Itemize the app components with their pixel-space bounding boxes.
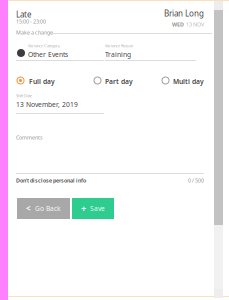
staticText: WED [172, 21, 184, 28]
staticText: Don't disclose personal info [16, 177, 86, 184]
staticText: Variance Category [28, 43, 60, 48]
staticText: Other Events [28, 50, 68, 59]
staticText: < [26, 203, 31, 214]
staticText: Training [105, 50, 131, 59]
staticText: Late [16, 9, 32, 20]
staticText: Variance Reason [105, 43, 133, 48]
staticText: 13 NOV [186, 21, 204, 28]
staticText: Make a change [16, 29, 53, 36]
staticText: Save [90, 204, 105, 213]
staticText: 0 / 500 [188, 177, 204, 184]
button[interactable]: + [72, 198, 114, 219]
staticText: Comments [16, 134, 43, 141]
staticText: Shift Date [16, 93, 32, 98]
staticText: 13 November, 2019 [16, 100, 78, 109]
staticText: Brian Long [164, 8, 204, 19]
staticText: Part day [105, 77, 133, 86]
staticText: 15:00 - 23:00 [16, 18, 46, 25]
staticText: + [81, 202, 86, 215]
button[interactable]: < [17, 198, 70, 219]
staticText: Full day [29, 77, 55, 86]
staticText: Multi day [173, 77, 204, 86]
staticText: Go Back [35, 204, 61, 213]
